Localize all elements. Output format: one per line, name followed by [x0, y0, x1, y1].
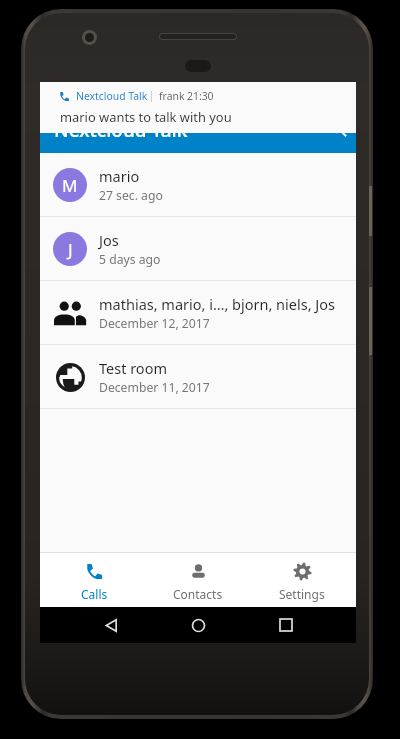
staticText: mario — [99, 166, 140, 186]
staticText: Settings — [279, 586, 325, 602]
staticText: M — [62, 174, 78, 197]
staticText: Nextcloud Talk — [76, 89, 148, 103]
staticText: mathias, mario, i…, bjorn, niels, Jos — [99, 294, 336, 314]
button[interactable]: mathias, mario, i…, bjorn, niels, Jos — [40, 281, 356, 345]
staticText: Test room — [99, 358, 167, 378]
button[interactable]: Back — [94, 608, 128, 642]
staticText: frank — [159, 89, 185, 103]
button[interactable]: Settings — [252, 552, 352, 607]
button[interactable]: Nextcloud Talk — [40, 82, 356, 133]
button[interactable]: J — [40, 217, 356, 281]
staticText: Jos — [99, 230, 119, 250]
staticText: Contacts — [173, 586, 223, 602]
button[interactable]: Calls — [44, 552, 144, 607]
staticText: 27 sec. ago — [99, 187, 163, 204]
staticText: December 12, 2017 — [99, 315, 210, 332]
button[interactable]: Home — [181, 608, 215, 642]
button[interactable]: M — [40, 153, 356, 217]
button[interactable]: Recents — [269, 608, 303, 642]
button[interactable]: Contacts — [148, 552, 248, 607]
button[interactable]: Test room — [40, 345, 356, 409]
staticText: J — [68, 238, 73, 261]
staticText: Calls — [81, 586, 108, 602]
staticText: 21:30 — [187, 89, 214, 103]
staticText: 5 days ago — [99, 251, 161, 268]
staticText: mario wants to talk with you — [60, 108, 232, 126]
staticText: Nextcloud Talk — [54, 117, 188, 143]
staticText: December 11, 2017 — [99, 379, 210, 396]
button[interactable]: Search — [325, 115, 351, 141]
